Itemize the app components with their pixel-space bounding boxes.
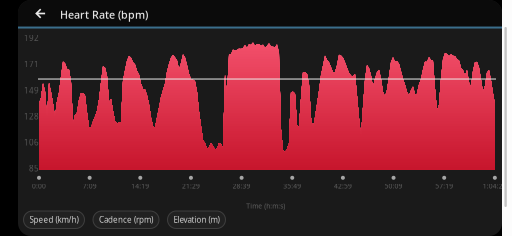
- staticText: Speed (km/h): [29, 214, 78, 225]
- staticText: 149: [24, 85, 39, 96]
- staticText: 35:49: [283, 181, 301, 190]
- staticText: 192: [24, 32, 39, 43]
- staticText: Heart Rate (bpm): [60, 7, 148, 22]
- staticText: 28:39: [233, 181, 251, 190]
- staticText: 21:29: [182, 181, 200, 190]
- button[interactable]: Elevation (m): [167, 211, 225, 228]
- staticText: Time (h:m:s): [246, 201, 285, 210]
- staticText: 1:04:29: [483, 181, 507, 190]
- staticText: 14:19: [131, 181, 149, 190]
- staticText: 85: [29, 163, 39, 174]
- staticText: 57:19: [435, 181, 453, 190]
- staticText: 128: [24, 111, 39, 122]
- staticText: Elevation (m): [173, 214, 219, 225]
- button[interactable]: Speed (km/h): [23, 211, 84, 228]
- staticText: 50:09: [385, 181, 403, 190]
- button[interactable]: Back: [28, 1, 52, 25]
- staticText: 106: [24, 137, 39, 148]
- staticText: 171: [24, 59, 39, 70]
- button[interactable]: Cadence (rpm): [93, 211, 159, 228]
- staticText: 0:00: [32, 181, 46, 190]
- staticText: 7:09: [83, 181, 97, 190]
- staticText: Cadence (rpm): [99, 214, 153, 225]
- staticText: 42:59: [334, 181, 352, 190]
